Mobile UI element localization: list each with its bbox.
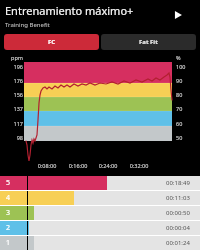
staticText: 00:18:49 xyxy=(166,179,190,187)
staticText: 98 xyxy=(3,134,23,141)
staticText: 100 xyxy=(176,63,196,70)
button[interactable]: 2 xyxy=(0,221,200,235)
staticText: 60 xyxy=(176,120,196,127)
staticText: 4 xyxy=(6,193,11,203)
button[interactable]: 1 xyxy=(0,236,200,250)
button[interactable]: FC xyxy=(4,34,99,50)
staticText: FC xyxy=(48,38,56,46)
staticText: 0:08:00 xyxy=(35,162,59,169)
staticText: 70 xyxy=(176,105,196,112)
staticText: 90 xyxy=(176,77,196,84)
staticText: 137 xyxy=(3,105,23,112)
button[interactable]: Play xyxy=(171,8,185,22)
staticText: 5 xyxy=(6,178,11,188)
button[interactable]: Fat Fit xyxy=(101,34,196,50)
button[interactable]: 5 xyxy=(0,176,200,190)
staticText: 156 xyxy=(3,91,23,98)
staticText: 0:32:00 xyxy=(127,162,151,169)
button[interactable]: 4 xyxy=(0,191,200,205)
staticText: 0:16:00 xyxy=(66,162,90,169)
staticText: 00:00:04 xyxy=(166,224,190,232)
staticText: 00:11:03 xyxy=(166,194,190,202)
staticText: 00:00:50 xyxy=(166,209,190,217)
button[interactable]: 3 xyxy=(0,206,200,220)
staticText: 196 xyxy=(3,63,23,70)
staticText: 0:24:00 xyxy=(96,162,120,169)
staticText: 1 xyxy=(6,238,11,248)
staticText: 2 xyxy=(6,223,11,233)
staticText: 117 xyxy=(3,120,23,127)
staticText: Training Benefit xyxy=(5,21,50,29)
staticText: 80 xyxy=(176,91,196,98)
staticText: 00:01:24 xyxy=(166,239,190,247)
staticText: 176 xyxy=(3,77,23,84)
staticText: Fat Fit xyxy=(139,38,158,46)
staticText: ppm xyxy=(3,54,23,61)
staticText: % xyxy=(176,54,196,61)
staticText: 50 xyxy=(176,134,196,141)
staticText: 3 xyxy=(6,208,11,218)
staticText: Entrenamiento máximo+ xyxy=(5,3,134,18)
